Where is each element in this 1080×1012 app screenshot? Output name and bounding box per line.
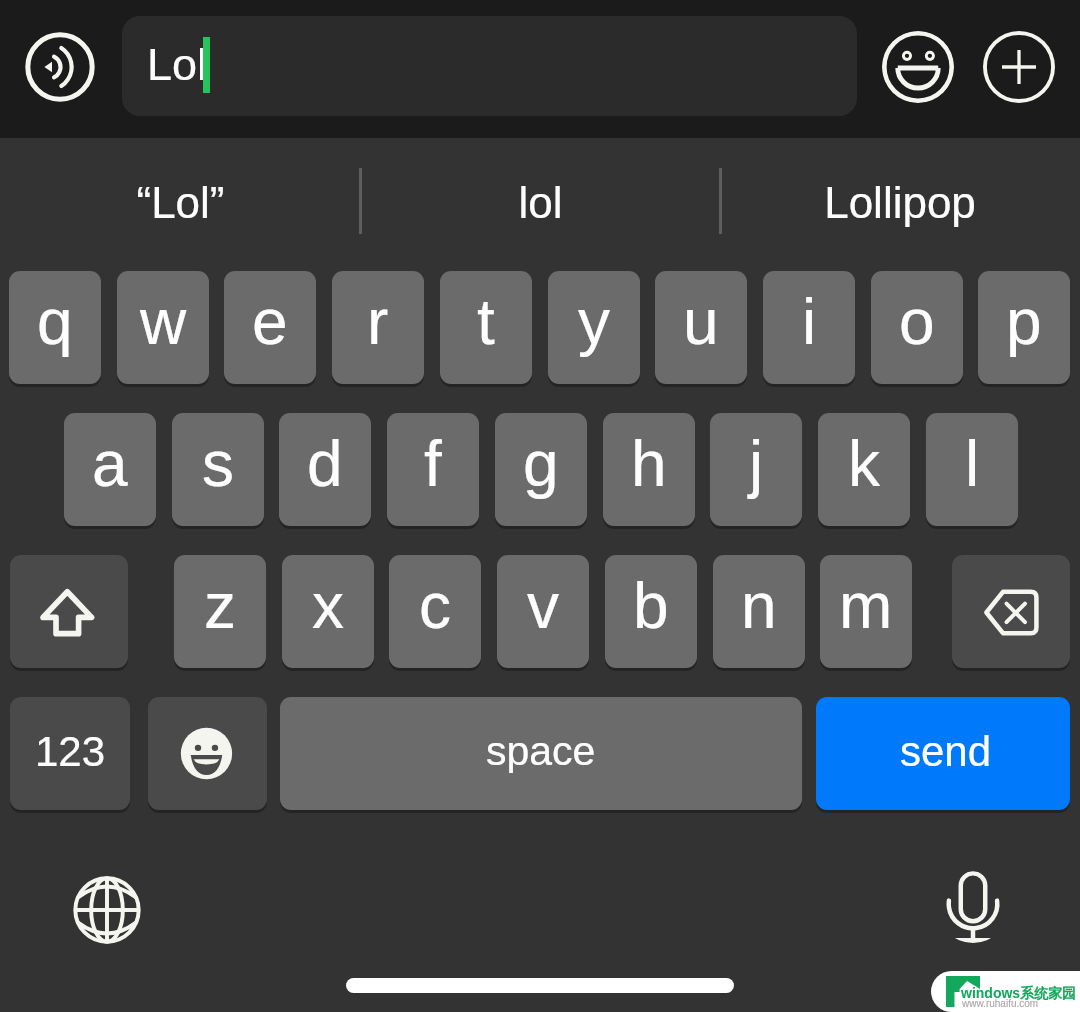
- staticText: k: [848, 428, 880, 500]
- button[interactable]: v: [497, 555, 589, 668]
- staticText: w: [140, 286, 187, 358]
- staticText: z: [204, 570, 236, 642]
- button[interactable]: c: [389, 555, 481, 668]
- button[interactable]: k: [818, 413, 910, 526]
- button[interactable]: y: [548, 271, 640, 384]
- button[interactable]: u: [655, 271, 747, 384]
- button[interactable]: b: [605, 555, 697, 668]
- button[interactable]: e: [224, 271, 316, 384]
- button[interactable]: z: [174, 555, 266, 668]
- button[interactable]: Switch language: [71, 874, 143, 946]
- button[interactable]: Dictation: [937, 871, 1009, 943]
- staticText: f: [424, 428, 442, 500]
- staticText: h: [631, 428, 667, 500]
- button[interactable]: lol: [360, 138, 720, 271]
- button[interactable]: m: [820, 555, 912, 668]
- staticText: b: [633, 570, 669, 642]
- staticText: “Lol”: [136, 178, 225, 227]
- button[interactable]: s: [172, 413, 264, 526]
- button[interactable]: send: [816, 697, 1070, 810]
- staticText: t: [477, 286, 495, 358]
- button[interactable]: l: [926, 413, 1018, 526]
- button[interactable]: w: [117, 271, 209, 384]
- button[interactable]: Emoji keyboard: [148, 697, 267, 810]
- staticText: www.ruhaifu.com: [962, 998, 1039, 1009]
- button[interactable]: i: [763, 271, 855, 384]
- staticText: send: [900, 728, 992, 775]
- button[interactable]: Voice input: [24, 31, 96, 103]
- button[interactable]: p: [978, 271, 1070, 384]
- button[interactable]: “Lol”: [0, 138, 360, 271]
- staticText: a: [92, 428, 128, 500]
- button[interactable]: g: [495, 413, 587, 526]
- button[interactable]: r: [332, 271, 424, 384]
- staticText: n: [741, 570, 777, 642]
- staticText: 123: [35, 728, 106, 775]
- button[interactable]: space: [280, 697, 802, 810]
- button[interactable]: n: [713, 555, 805, 668]
- staticText: windows系统家园: [961, 985, 1077, 1003]
- button[interactable]: a: [64, 413, 156, 526]
- button[interactable]: x: [282, 555, 374, 668]
- button[interactable]: d: [279, 413, 371, 526]
- button[interactable]: o: [871, 271, 963, 384]
- button[interactable]: j: [710, 413, 802, 526]
- button[interactable]: Lollipop: [720, 138, 1080, 271]
- staticText: q: [37, 286, 73, 358]
- button[interactable]: Emoji: [882, 31, 954, 103]
- staticText: p: [1006, 286, 1042, 358]
- staticText: space: [486, 728, 596, 774]
- staticText: j: [749, 428, 764, 500]
- staticText: s: [202, 428, 234, 500]
- staticText: e: [252, 286, 288, 358]
- staticText: x: [312, 570, 344, 642]
- staticText: r: [367, 286, 389, 358]
- staticText: o: [899, 286, 935, 358]
- staticText: y: [578, 286, 610, 358]
- button[interactable]: h: [603, 413, 695, 526]
- button[interactable]: t: [440, 271, 532, 384]
- staticText: lol: [518, 178, 563, 227]
- staticText: d: [307, 428, 343, 500]
- button[interactable]: q: [9, 271, 101, 384]
- button[interactable]: Add attachment: [983, 31, 1055, 103]
- button[interactable]: Lol: [122, 16, 857, 116]
- staticText: Lollipop: [824, 178, 976, 227]
- button[interactable]: f: [387, 413, 479, 526]
- button[interactable]: Shift: [10, 555, 128, 668]
- button[interactable]: 123: [10, 697, 130, 810]
- staticText: m: [839, 570, 893, 642]
- staticText: i: [802, 286, 817, 358]
- staticText: l: [965, 428, 980, 500]
- staticText: u: [683, 286, 719, 358]
- staticText: c: [419, 570, 451, 642]
- button[interactable]: Backspace: [952, 555, 1070, 668]
- staticText: v: [527, 570, 559, 642]
- staticText: Lol: [147, 39, 208, 89]
- staticText: g: [523, 428, 559, 500]
